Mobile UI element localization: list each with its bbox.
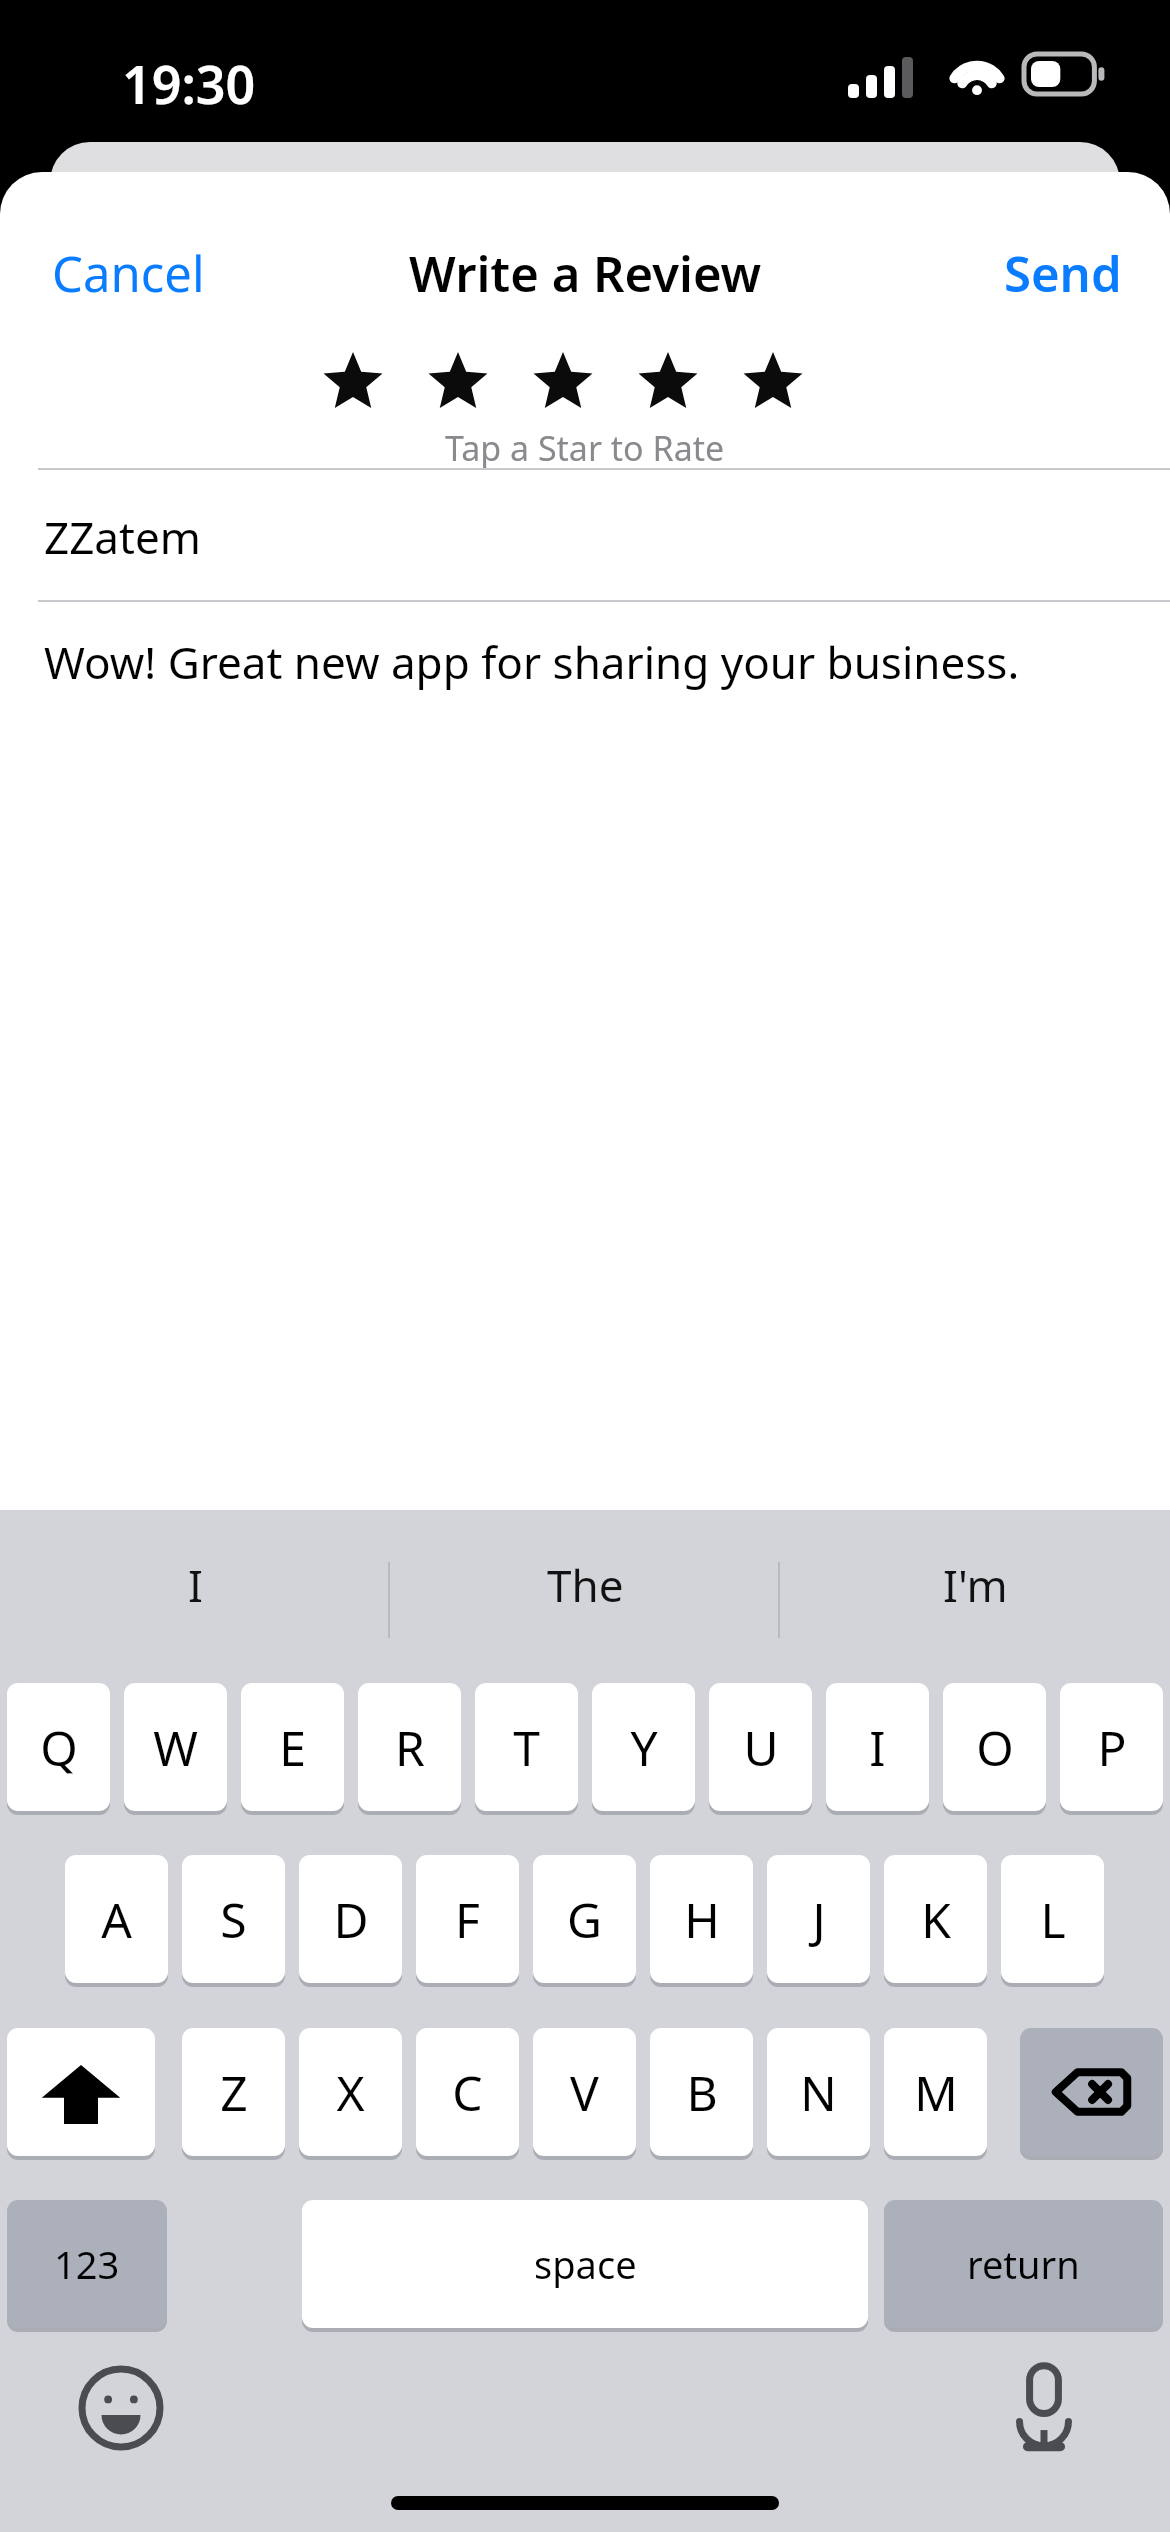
- staticText: U: [743, 1715, 779, 1780]
- button[interactable]: Rate 5 stars: [742, 352, 804, 414]
- staticText: N: [800, 2060, 837, 2125]
- staticText: Z: [220, 2060, 248, 2125]
- staticText: return: [967, 2238, 1080, 2290]
- staticText: O: [976, 1715, 1014, 1780]
- staticText: space: [534, 2238, 637, 2290]
- staticText: I: [869, 1715, 886, 1780]
- staticText: R: [395, 1715, 425, 1780]
- staticText: Write a Review: [409, 240, 762, 307]
- staticText: 19:30: [122, 48, 256, 119]
- button[interactable]: L: [1001, 1855, 1104, 1983]
- button[interactable]: M: [884, 2028, 987, 2156]
- button[interactable]: B: [650, 2028, 753, 2156]
- staticText: L: [1040, 1887, 1066, 1952]
- button[interactable]: 123: [7, 2200, 167, 2328]
- button[interactable]: Rate 1 stars: [322, 352, 384, 414]
- button[interactable]: S: [182, 1855, 285, 1983]
- button[interactable]: Emoji keyboard: [78, 2365, 164, 2451]
- staticText: Wow! Great new app for sharing your busi…: [44, 632, 1020, 692]
- button[interactable]: I'm: [780, 1530, 1170, 1640]
- button[interactable]: P: [1060, 1683, 1163, 1811]
- button[interactable]: W: [124, 1683, 227, 1811]
- button[interactable]: Cancel: [40, 230, 217, 317]
- staticText: The: [547, 1555, 624, 1615]
- button[interactable]: E: [241, 1683, 344, 1811]
- button[interactable]: J: [767, 1855, 870, 1983]
- staticText: Cancel: [52, 240, 205, 307]
- button[interactable]: Shift: [7, 2028, 155, 2156]
- button[interactable]: V: [533, 2028, 636, 2156]
- button[interactable]: space: [302, 2200, 868, 2328]
- staticText: K: [921, 1887, 951, 1952]
- button[interactable]: I: [826, 1683, 929, 1811]
- staticText: Q: [40, 1715, 78, 1780]
- staticText: A: [101, 1887, 132, 1952]
- staticText: G: [567, 1887, 602, 1952]
- button[interactable]: Backspace: [1020, 2028, 1163, 2156]
- button[interactable]: I: [0, 1530, 390, 1640]
- staticText: H: [684, 1887, 720, 1952]
- button[interactable]: Rate 3 stars: [532, 352, 594, 414]
- staticText: I: [188, 1555, 203, 1615]
- button[interactable]: Send: [992, 230, 1134, 317]
- button[interactable]: A: [65, 1855, 168, 1983]
- staticText: ZZatem: [44, 507, 201, 567]
- button[interactable]: Y: [592, 1683, 695, 1811]
- button[interactable]: T: [475, 1683, 578, 1811]
- button[interactable]: C: [416, 2028, 519, 2156]
- staticText: J: [812, 1887, 826, 1952]
- staticText: Tap a Star to Rate: [445, 425, 725, 471]
- staticText: V: [570, 2060, 599, 2125]
- button[interactable]: The: [390, 1530, 780, 1640]
- staticText: P: [1097, 1715, 1127, 1780]
- staticText: X: [336, 2060, 365, 2125]
- button[interactable]: O: [943, 1683, 1046, 1811]
- button[interactable]: U: [709, 1683, 812, 1811]
- staticText: F: [455, 1887, 480, 1952]
- button[interactable]: G: [533, 1855, 636, 1983]
- staticText: 123: [54, 2238, 120, 2290]
- staticText: T: [513, 1715, 540, 1780]
- staticText: M: [914, 2060, 958, 2125]
- staticText: E: [279, 1715, 306, 1780]
- button[interactable]: K: [884, 1855, 987, 1983]
- button[interactable]: Rate 4 stars: [637, 352, 699, 414]
- staticText: W: [153, 1715, 198, 1780]
- staticText: D: [333, 1887, 369, 1952]
- staticText: Y: [630, 1715, 658, 1780]
- button[interactable]: X: [299, 2028, 402, 2156]
- button[interactable]: H: [650, 1855, 753, 1983]
- button[interactable]: Z: [182, 2028, 285, 2156]
- button[interactable]: F: [416, 1855, 519, 1983]
- button[interactable]: Rate 2 stars: [427, 352, 489, 414]
- button[interactable]: N: [767, 2028, 870, 2156]
- button[interactable]: R: [358, 1683, 461, 1811]
- button[interactable]: return: [884, 2200, 1163, 2328]
- button[interactable]: Q: [7, 1683, 110, 1811]
- staticText: I'm: [943, 1555, 1008, 1615]
- button[interactable]: D: [299, 1855, 402, 1983]
- staticText: B: [686, 2060, 718, 2125]
- button[interactable]: Dictation: [1008, 2362, 1080, 2454]
- staticText: S: [220, 1887, 247, 1952]
- staticText: Send: [1004, 240, 1122, 307]
- staticText: C: [452, 2060, 483, 2125]
